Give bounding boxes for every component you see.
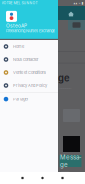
staticText: Home: [13, 44, 24, 49]
staticText: VOTRE MEL SUNNOT: [1, 1, 37, 5]
staticText: Freelancing Nurses Exchange: [6, 29, 55, 33]
staticText: OsteoAP: [6, 23, 27, 29]
button[interactable]: Recent apps: [52, 172, 72, 184]
button[interactable]: Home: [32, 172, 52, 184]
staticText: Vente et Conditions: [13, 70, 46, 75]
staticText: ge: [58, 72, 70, 84]
button[interactable]: Home: [0, 40, 58, 53]
staticText: ▁▁▁▁: [61, 168, 69, 171]
staticText: Privacy And Policy: [13, 83, 47, 88]
button[interactable]: Partager: [0, 93, 58, 106]
button[interactable]: Privacy And Policy: [0, 79, 58, 92]
button[interactable]: Nous contacter: [0, 53, 58, 66]
button[interactable]: Vente et Conditions: [0, 66, 58, 79]
staticText: Nous contacter: [13, 57, 39, 62]
staticText: ▴▴ ⌁ ▮: [73, 1, 83, 5]
button[interactable]: Back: [12, 172, 32, 184]
staticText: Message: [60, 154, 81, 168]
staticText: Partager: [13, 97, 29, 101]
